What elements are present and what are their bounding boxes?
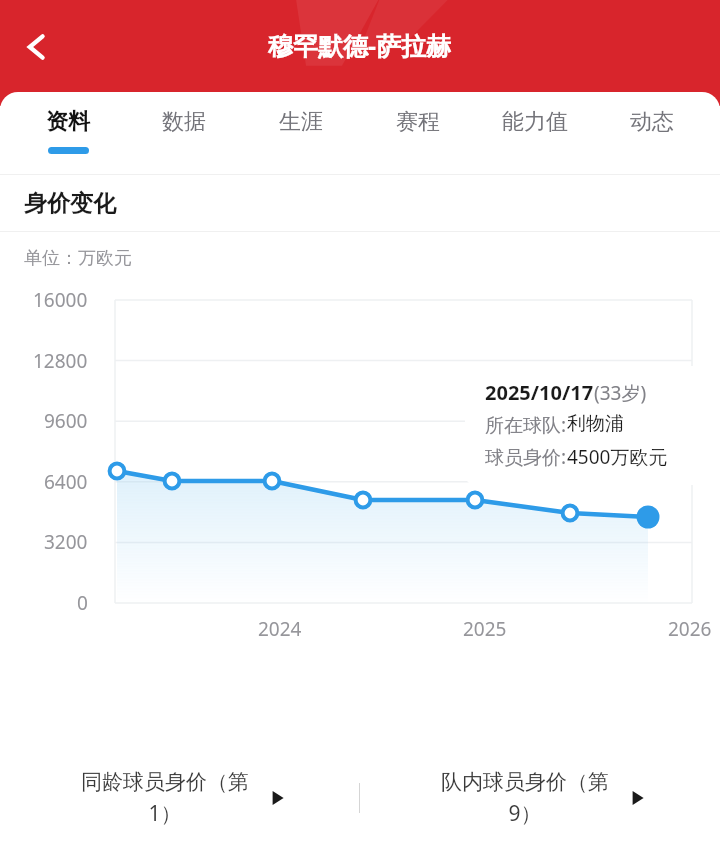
button[interactable]: Back <box>8 18 66 76</box>
staticText: 2025/10/17 <box>485 379 594 406</box>
staticText: 动态 <box>630 108 674 136</box>
staticText: 16000 <box>33 287 88 313</box>
staticText: 2024 <box>258 616 302 642</box>
staticText: 赛程 <box>396 108 440 136</box>
button[interactable]: 生涯 <box>242 92 359 174</box>
staticText: 12800 <box>33 348 88 374</box>
staticText: 2026 <box>668 616 712 642</box>
staticText: 所在球队: <box>485 412 567 438</box>
button[interactable]: 赛程 <box>359 92 476 174</box>
staticText: 2025 <box>463 616 507 642</box>
button[interactable]: 动态 <box>593 92 710 174</box>
staticText: 4500万欧元 <box>567 444 668 470</box>
button[interactable]: 能力值 <box>476 92 593 174</box>
staticText: 身价变化 <box>24 189 116 218</box>
staticText: 球员身价: <box>485 444 567 470</box>
staticText: 资料 <box>46 108 90 136</box>
staticText: 数据 <box>162 108 206 136</box>
staticText: (33岁) <box>594 380 647 406</box>
staticText: 利物浦 <box>567 412 624 436</box>
staticText: 9600 <box>44 408 88 434</box>
staticText: 0 <box>77 590 88 616</box>
button[interactable]: 同龄球员身价（第1） <box>0 742 359 854</box>
staticText: 单位：万欧元 <box>24 247 132 270</box>
staticText: 能力值 <box>502 108 568 136</box>
staticText: 3200 <box>44 529 88 555</box>
button[interactable]: 资料 <box>10 92 126 174</box>
staticText: 穆罕默德-萨拉赫 <box>268 28 452 62</box>
staticText: 生涯 <box>279 108 323 136</box>
staticText: 队内球员身价（第9） <box>432 769 618 827</box>
button[interactable]: 数据 <box>126 92 242 174</box>
staticText: 6400 <box>44 469 88 495</box>
staticText: 同龄球员身价（第1） <box>72 769 258 827</box>
button[interactable]: 队内球员身价（第9） <box>360 742 720 854</box>
